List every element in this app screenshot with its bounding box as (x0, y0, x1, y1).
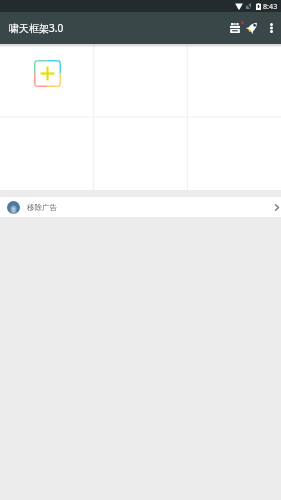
button[interactable]: Boost (244, 19, 262, 37)
staticText: 啸天框架3.0 (9, 21, 64, 35)
staticText: 8:43 (263, 1, 278, 11)
button[interactable]: Add app (34, 60, 61, 87)
button[interactable]: 移除广告 (0, 197, 281, 217)
button[interactable]: Store (226, 19, 244, 37)
staticText: 移除广告 (27, 203, 57, 212)
button[interactable]: More options (262, 19, 280, 37)
